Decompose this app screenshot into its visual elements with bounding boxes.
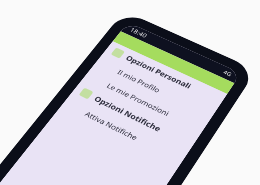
staticText: Opzioni Notifiche: [92, 93, 164, 134]
button[interactable]: Opzioni Notifiche: [70, 81, 198, 153]
staticText: 4G: [222, 69, 233, 78]
staticText: Il mio Profilo: [115, 68, 162, 94]
staticText: Attiva Notifiche: [83, 109, 140, 142]
button[interactable]: Il mio Profilo: [92, 54, 218, 123]
staticText: Le mie Promozioni: [105, 81, 172, 118]
staticText: Opzioni Personali: [124, 53, 194, 91]
button[interactable]: Le mie Promozioni: [81, 67, 208, 137]
button[interactable]: Opzioni Personali: [102, 41, 227, 108]
staticText: 18:40: [128, 26, 149, 40]
button[interactable]: Attiva Notifiche: [59, 95, 188, 168]
